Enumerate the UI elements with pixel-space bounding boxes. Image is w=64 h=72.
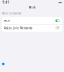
button[interactable]: Ask to Join Networks xyxy=(2,25,62,32)
staticText: ◼◼◼ xyxy=(58,2,61,3)
staticText: 9:41 xyxy=(2,1,9,4)
staticText: Wi-Fi xyxy=(4,19,10,22)
staticText: Wi-Fi xyxy=(28,6,35,9)
staticText: Ask to Join Networks xyxy=(4,26,32,30)
staticText: ◆ xyxy=(1,61,4,66)
button[interactable]: Wi-Fi xyxy=(2,17,62,24)
button[interactable]: Info xyxy=(1,61,4,66)
staticText: Wi-Fi networks xyxy=(2,12,21,15)
staticText: Off xyxy=(55,26,59,30)
